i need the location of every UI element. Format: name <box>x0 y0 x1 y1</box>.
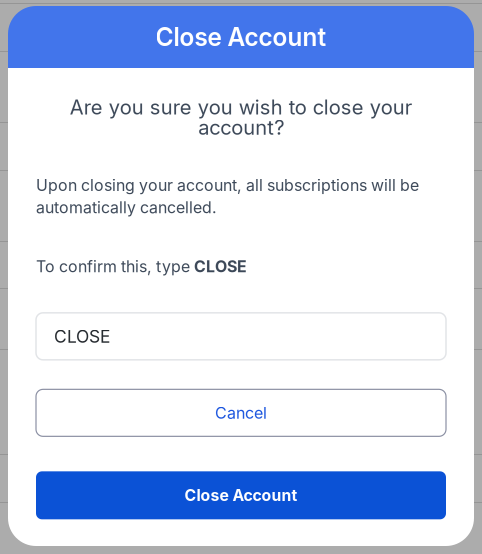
staticText: Are you sure you wish to close your acco… <box>69 95 412 140</box>
staticText: To confirm this, type CLOSE <box>36 257 247 276</box>
button[interactable]: Cancel <box>36 389 446 436</box>
staticText: Close Account <box>155 22 326 52</box>
staticText: CLOSE <box>54 326 110 347</box>
staticText: Close Account <box>184 486 297 505</box>
staticText: Cancel <box>215 403 267 423</box>
button[interactable]: Close Account <box>36 471 446 519</box>
staticText: Upon closing your account, all subscript… <box>36 176 419 217</box>
